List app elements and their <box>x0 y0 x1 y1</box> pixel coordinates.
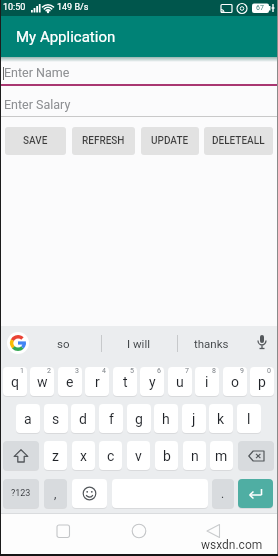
staticText: r <box>95 374 100 390</box>
staticText: o <box>231 374 239 390</box>
staticText: 9 <box>240 367 244 375</box>
button[interactable]: h <box>154 404 178 433</box>
staticText: h <box>162 411 170 427</box>
staticText: SAVE <box>23 135 48 147</box>
button[interactable]: SAVE <box>5 127 66 155</box>
staticText: DELETEALL <box>212 135 265 147</box>
button[interactable] <box>3 441 39 470</box>
button[interactable]: so <box>35 328 91 358</box>
button[interactable]: thanks <box>184 328 239 358</box>
staticText: b <box>163 448 171 464</box>
staticText: n <box>191 448 199 464</box>
staticText: w <box>37 374 48 390</box>
staticText: 149 B/s <box>57 2 89 13</box>
button[interactable]: f <box>99 404 123 433</box>
staticText: so <box>57 337 70 350</box>
button[interactable]: v <box>127 441 150 470</box>
staticText: 1 <box>20 367 24 375</box>
button[interactable]: i <box>195 367 219 396</box>
staticText: My Application <box>16 28 116 46</box>
button[interactable]: k <box>209 404 233 433</box>
button[interactable]: y <box>140 367 164 396</box>
staticText: q <box>11 374 19 390</box>
staticText: 3 <box>75 367 79 375</box>
staticText: v <box>135 448 142 464</box>
staticText: 7 <box>185 367 189 375</box>
button[interactable]: REFRESH <box>72 127 135 155</box>
staticText: u <box>176 374 184 390</box>
staticText: ?123 <box>11 488 31 499</box>
button[interactable]: e <box>58 367 82 396</box>
staticText: s <box>52 411 60 427</box>
staticText: , <box>54 487 57 501</box>
staticText: Enter Salary <box>4 97 71 112</box>
staticText: Enter Name <box>4 65 70 80</box>
button[interactable] <box>182 518 248 552</box>
staticText: k <box>217 411 225 427</box>
button[interactable]: I will <box>108 328 170 358</box>
staticText: I will <box>127 337 151 350</box>
staticText: z <box>52 448 59 464</box>
staticText: x <box>80 448 87 464</box>
button[interactable]: x <box>72 441 95 470</box>
staticText: 0 <box>267 367 271 375</box>
button[interactable] <box>238 479 273 508</box>
button[interactable] <box>30 518 96 552</box>
button[interactable]: l <box>237 404 261 433</box>
button[interactable]: ?123 <box>3 479 39 508</box>
staticText: e <box>66 374 74 390</box>
button[interactable] <box>106 518 172 552</box>
button[interactable]: o <box>223 367 247 396</box>
staticText: a <box>24 411 32 427</box>
staticText: 4 <box>102 367 106 375</box>
staticText: . <box>221 487 225 501</box>
staticText: d <box>79 411 87 427</box>
staticText: g <box>135 411 143 427</box>
button[interactable]: UPDATE <box>141 127 199 155</box>
staticText: f <box>109 411 114 427</box>
staticText: 8 <box>212 367 216 375</box>
button[interactable]: wsxdn.com <box>201 538 263 552</box>
button[interactable]: z <box>44 441 67 470</box>
button[interactable]: w <box>30 367 54 396</box>
button[interactable]: p <box>250 367 274 396</box>
staticText: c <box>107 448 115 464</box>
staticText: j <box>192 411 196 427</box>
button[interactable] <box>255 334 269 352</box>
button[interactable]: t <box>113 367 137 396</box>
button[interactable]: . <box>212 479 234 508</box>
staticText: 2 <box>47 367 51 375</box>
staticText: p <box>258 374 266 390</box>
button[interactable]: , <box>44 479 67 508</box>
staticText: m <box>215 448 228 464</box>
staticText: thanks <box>194 337 229 350</box>
button[interactable]: j <box>182 404 206 433</box>
staticText: 10:50 <box>3 2 26 13</box>
staticText: 5 <box>130 367 134 375</box>
button[interactable]: b <box>155 441 178 470</box>
button[interactable]: c <box>99 441 122 470</box>
button[interactable]: s <box>44 404 68 433</box>
staticText: i <box>205 374 209 390</box>
button[interactable]: u <box>168 367 192 396</box>
staticText: 67 <box>256 4 264 12</box>
button[interactable] <box>238 441 274 470</box>
staticText: REFRESH <box>82 135 125 147</box>
button[interactable]: m <box>210 441 233 470</box>
button[interactable]: DELETEALL <box>204 127 273 155</box>
staticText: t <box>123 374 128 390</box>
button[interactable]: d <box>71 404 95 433</box>
staticText: l <box>247 411 251 427</box>
staticText: UPDATE <box>151 135 189 147</box>
staticText: y <box>149 374 156 390</box>
staticText: 6 <box>157 367 161 375</box>
button[interactable] <box>72 479 107 508</box>
button[interactable]: n <box>183 441 206 470</box>
button[interactable]: q <box>3 367 27 396</box>
button[interactable]: g <box>127 404 151 433</box>
button[interactable]: a <box>16 404 40 433</box>
button[interactable]: r <box>85 367 109 396</box>
